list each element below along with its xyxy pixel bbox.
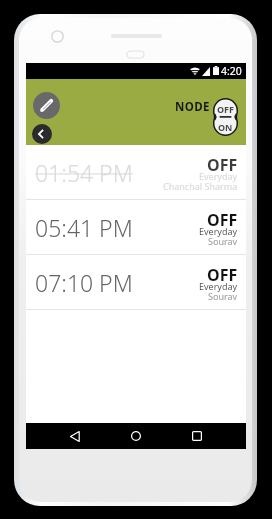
- staticText: Everyday: [199, 225, 238, 237]
- staticText: 07:10 PM: [35, 267, 133, 298]
- staticText: 05:41 PM: [35, 212, 133, 243]
- staticText: NODE: [175, 99, 210, 115]
- button[interactable]: 05:41 PM: [26, 200, 246, 254]
- staticText: Sourav: [208, 235, 238, 247]
- staticText: OFF: [207, 154, 238, 176]
- staticText: OFF: [207, 264, 238, 286]
- staticText: OFF: [217, 103, 235, 115]
- button[interactable]: Recent apps: [184, 423, 210, 449]
- staticText: Everyday: [199, 280, 238, 292]
- staticText: OFF: [207, 209, 238, 231]
- staticText: 01:54 PM: [35, 157, 133, 188]
- staticText: ON: [218, 121, 233, 133]
- button[interactable]: 01:54 PM: [26, 145, 246, 199]
- staticText: Sourav: [208, 290, 238, 302]
- button[interactable]: Back: [62, 423, 88, 449]
- button[interactable]: Edit: [33, 92, 60, 119]
- button[interactable]: 07:10 PM: [26, 255, 246, 309]
- staticText: Chanchal Sharma: [163, 180, 238, 192]
- button[interactable]: Back: [32, 124, 52, 144]
- button[interactable]: Home: [123, 423, 149, 449]
- staticText: Everyday: [199, 170, 238, 182]
- staticText: 4:20: [221, 64, 242, 78]
- button[interactable]: Power toggle: [213, 98, 238, 136]
